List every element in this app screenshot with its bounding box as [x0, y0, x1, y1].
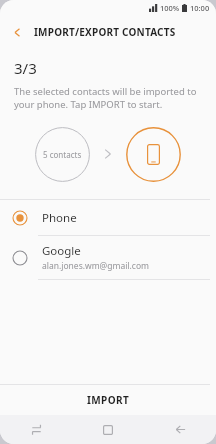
button[interactable]: Destination: Phone: [126, 127, 181, 182]
button[interactable]: 5 contacts: [35, 127, 90, 182]
staticText: 100%: [160, 3, 180, 13]
button[interactable]: Google: [0, 236, 216, 279]
staticText: 10:00: [190, 3, 210, 13]
staticText: IMPORT: [87, 393, 130, 407]
button[interactable]: Phone: [0, 200, 216, 235]
button[interactable]: Home: [72, 415, 144, 444]
staticText: IMPORT/EXPORT CONTACTS: [34, 25, 176, 39]
staticText: Google: [42, 243, 81, 259]
staticText: 5 contacts: [43, 149, 82, 160]
button[interactable]: Back: [144, 415, 216, 444]
staticText: alan.jones.wm@gmail.com: [42, 260, 150, 272]
button[interactable]: IMPORT: [0, 385, 216, 415]
staticText: Phone: [42, 210, 77, 226]
button[interactable]: Recents: [0, 415, 72, 444]
staticText: The selected contacts will be imported t…: [14, 85, 202, 111]
button[interactable]: Navigate up: [0, 16, 34, 48]
staticText: 3/3: [14, 58, 37, 78]
